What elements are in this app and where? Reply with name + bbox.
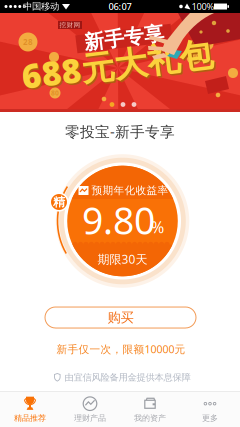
staticText: 购买 — [107, 309, 133, 326]
button[interactable]: 理财产品 — [60, 392, 120, 427]
staticText: 零投宝-新手专享 — [65, 122, 175, 141]
staticText: 688元大礼包 — [21, 42, 213, 87]
button[interactable]: 我的资产 — [120, 392, 180, 427]
staticText: 精 — [53, 195, 65, 209]
button[interactable]: 购买 — [45, 307, 196, 328]
staticText: 新手仅一次，限额10000元 — [56, 342, 185, 356]
staticText: 预期年化收益率 — [91, 184, 168, 197]
button[interactable]: 80 — [0, 13, 240, 112]
staticText: 期限30天 — [97, 251, 147, 267]
staticText: 由宜信风险备用金提供本息保障 — [64, 372, 190, 383]
staticText: 新手专享 — [84, 26, 164, 50]
staticText: % — [151, 216, 164, 238]
button[interactable]: 更多 — [180, 392, 240, 427]
staticText: 理财产品 — [74, 413, 106, 423]
staticText: 中国移动 — [23, 1, 59, 12]
staticText: 28 — [23, 37, 33, 47]
staticText: 精品推荐 — [14, 413, 46, 423]
staticText: 9.80 — [82, 195, 155, 245]
staticText: 688元大礼包 — [22, 44, 214, 88]
staticText: 80 — [51, 89, 59, 97]
staticText: 50 — [189, 52, 199, 62]
staticText: 更多 — [202, 413, 218, 423]
staticText: 06:07 — [108, 0, 131, 13]
staticText: 挖财网 — [59, 21, 80, 29]
staticText: 我的资产 — [134, 413, 166, 423]
staticText: 100% — [191, 0, 214, 13]
button[interactable]: 精品推荐 — [0, 392, 60, 427]
button[interactable]: 由宜信风险备用金提供本息保障 — [53, 372, 190, 383]
